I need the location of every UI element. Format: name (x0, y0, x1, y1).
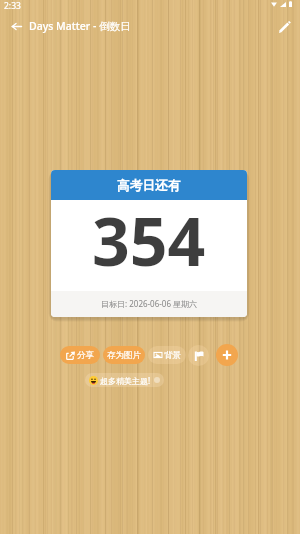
staticText: 354 (92, 195, 206, 285)
staticText: 超多精美主题! (100, 375, 151, 386)
button[interactable]: Back (0, 10, 32, 42)
staticText: 2:33 (4, 0, 21, 10)
staticText: 背景 (164, 350, 181, 361)
button[interactable]: Edit (268, 10, 300, 42)
staticText: 分享 (77, 350, 94, 361)
button[interactable]: Add (216, 344, 238, 366)
button[interactable]: 超多精美主题! (85, 373, 164, 387)
staticText: Days Matter - 倒数日 (29, 19, 131, 33)
button[interactable]: 背景 (148, 346, 186, 364)
button[interactable]: 分享 (60, 346, 100, 364)
staticText: 目标日: 2026-06-06 星期六 (101, 298, 198, 309)
button[interactable]: Flag (188, 345, 209, 366)
staticText: 存为图片 (107, 350, 141, 361)
button[interactable]: 存为图片 (103, 346, 145, 364)
staticText: 高考日还有 (117, 178, 181, 194)
